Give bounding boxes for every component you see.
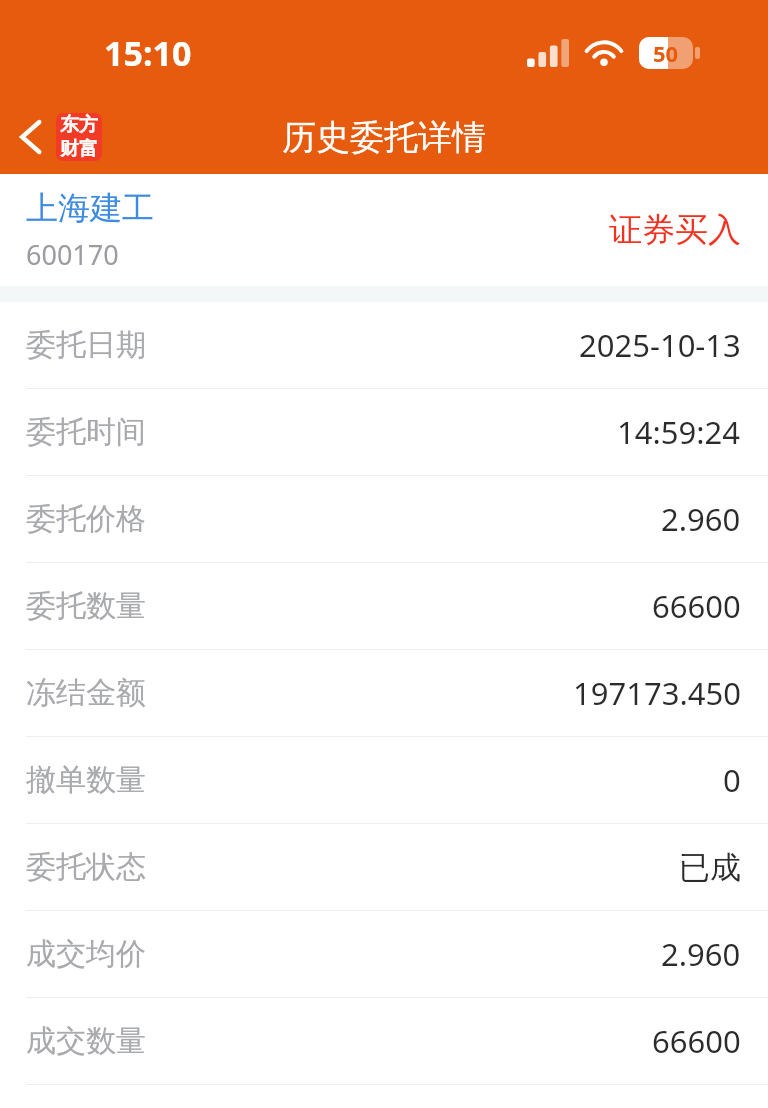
- staticText: 证券买入: [609, 209, 741, 251]
- staticText: 历史委托详情: [282, 116, 486, 159]
- button[interactable]: 成交数量: [0, 998, 768, 1084]
- staticText: 委托时间: [26, 413, 146, 451]
- staticText: 东方: [60, 113, 98, 137]
- staticText: 冻结金额: [26, 674, 146, 712]
- staticText: 66600: [652, 585, 741, 627]
- staticText: 委托状态: [26, 848, 146, 886]
- button[interactable]: 委托时间: [0, 389, 768, 475]
- staticText: 已成: [679, 848, 741, 887]
- staticText: 66600: [652, 1020, 741, 1062]
- staticText: 财富: [60, 137, 98, 161]
- button[interactable]: 撤单数量: [0, 737, 768, 823]
- staticText: 600170: [26, 236, 119, 273]
- staticText: 成交数量: [26, 1022, 146, 1060]
- button[interactable]: Back: [0, 105, 116, 169]
- staticText: 2025-10-13: [579, 324, 741, 366]
- staticText: 委托数量: [26, 587, 146, 625]
- staticText: 50: [653, 38, 679, 68]
- button[interactable]: 委托价格: [0, 476, 768, 562]
- staticText: 2.960: [661, 498, 741, 540]
- staticText: 197173.450: [573, 672, 741, 714]
- button[interactable]: 委托状态: [0, 824, 768, 910]
- staticText: 委托日期: [26, 326, 146, 364]
- staticText: 撤单数量: [26, 761, 146, 799]
- staticText: 14:59:24: [617, 411, 741, 453]
- staticText: 2.960: [661, 933, 741, 975]
- staticText: 委托价格: [26, 500, 146, 538]
- button[interactable]: 成交均价: [0, 911, 768, 997]
- staticText: 15:10: [104, 30, 192, 76]
- button[interactable]: 冻结金额: [0, 650, 768, 736]
- staticText: 成交均价: [26, 935, 146, 973]
- button[interactable]: 上海建工: [0, 174, 768, 286]
- staticText: 上海建工: [26, 188, 154, 228]
- button[interactable]: 委托数量: [0, 563, 768, 649]
- staticText: 0: [723, 759, 741, 801]
- button[interactable]: 委托日期: [0, 302, 768, 388]
